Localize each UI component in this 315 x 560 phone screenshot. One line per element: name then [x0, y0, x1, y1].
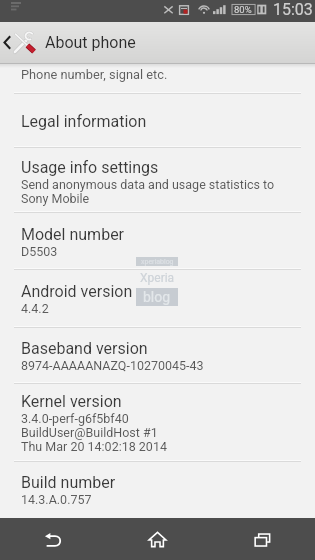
button[interactable]: Baseband version	[0, 328, 315, 382]
staticText: Baseband version	[21, 339, 148, 358]
staticText: Phone number, signal etc.	[21, 67, 168, 82]
staticText: 15:03	[273, 0, 313, 19]
staticText: 8974-AAAAANAZQ-10270045-43	[21, 358, 204, 373]
staticText: 3.4.0-perf-g6f5bf40 BuildUser@BuildHost …	[21, 411, 167, 454]
staticText: Kernel version	[21, 392, 122, 411]
staticText: 14.3.A.0.757	[21, 492, 92, 507]
button[interactable]: Recent apps	[210, 518, 315, 560]
staticText: xperiablog	[141, 258, 174, 266]
button[interactable]: Back	[0, 518, 105, 560]
button[interactable]: Usage info settings	[0, 148, 315, 211]
staticText: Legal information	[21, 112, 147, 131]
staticText: About phone	[45, 33, 136, 52]
staticText: Model number	[21, 225, 125, 244]
staticText: Build number	[21, 473, 116, 492]
button[interactable]: Legal information	[0, 94, 315, 146]
button[interactable]: Home	[105, 518, 210, 560]
staticText: 80%	[234, 4, 252, 15]
staticText: D5503	[21, 244, 58, 259]
staticText: blog	[143, 289, 171, 305]
button[interactable]: About phone	[0, 22, 315, 63]
button[interactable]: Model number	[0, 213, 315, 268]
staticText: Android version	[21, 282, 133, 301]
staticText: Send anonymous data and usage statistics…	[21, 177, 275, 206]
staticText: Xperia	[140, 271, 175, 285]
button[interactable]: Build number	[0, 462, 315, 518]
staticText: Usage info settings	[21, 158, 159, 177]
button[interactable]: Android version	[0, 270, 315, 326]
button[interactable]: Kernel version	[0, 384, 315, 460]
staticText: 4.4.2	[21, 301, 49, 316]
